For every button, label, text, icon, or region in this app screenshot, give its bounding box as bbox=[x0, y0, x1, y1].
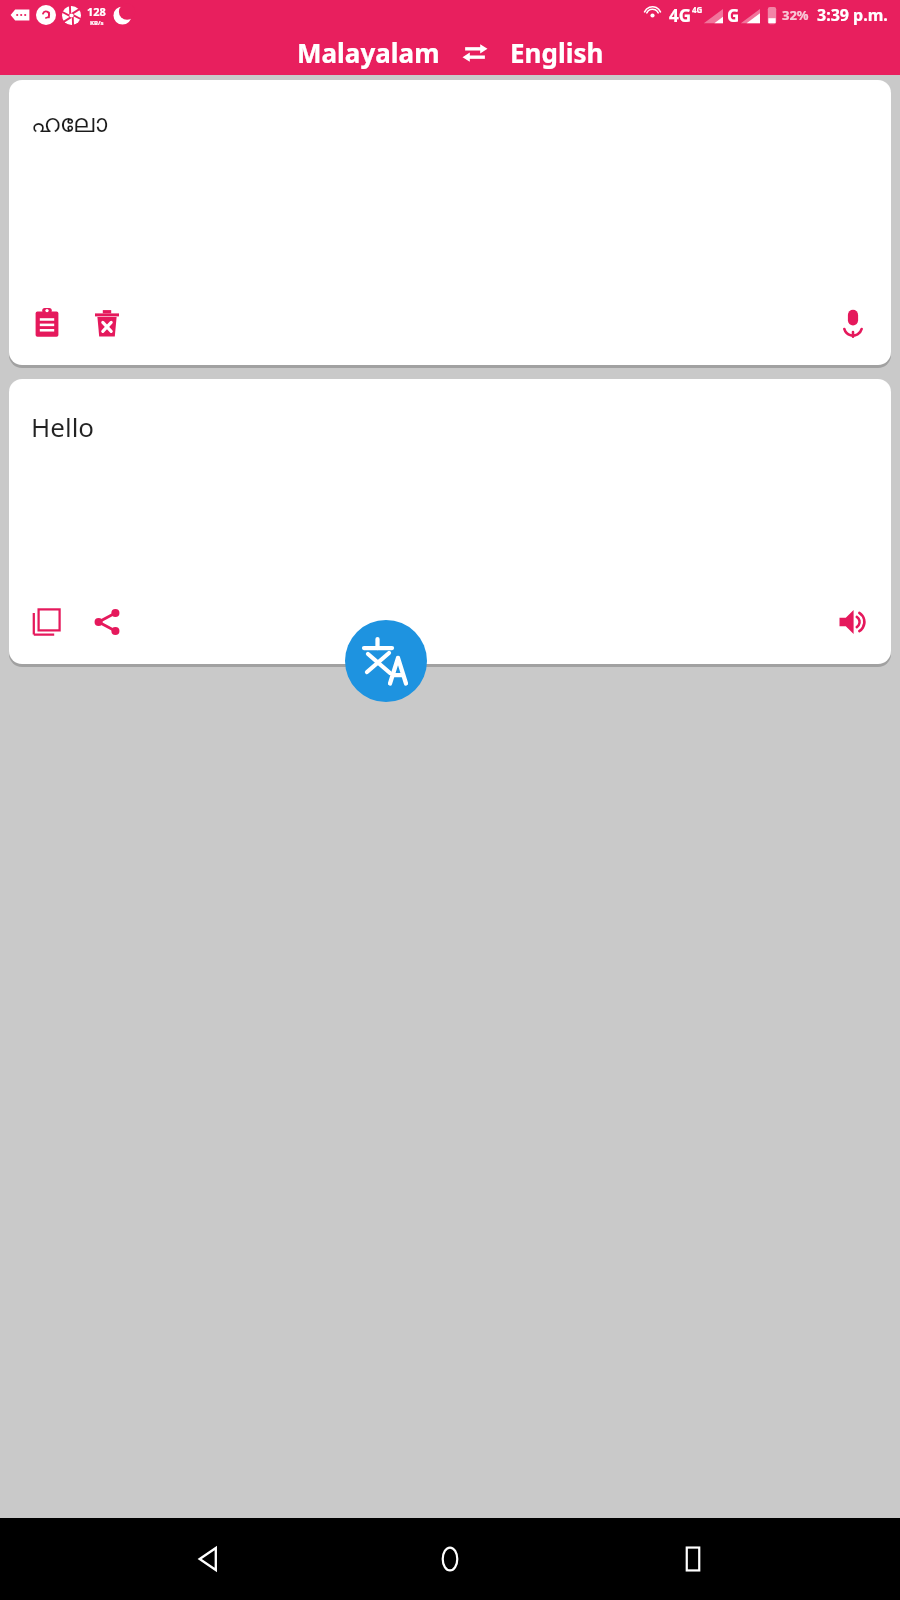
button[interactable]: Home bbox=[415, 1524, 485, 1594]
staticText: Hello bbox=[31, 409, 95, 444]
button[interactable]: Back bbox=[173, 1524, 243, 1594]
staticText: ഹലോ bbox=[31, 112, 108, 137]
button[interactable]: Speak translation bbox=[829, 598, 877, 646]
button[interactable]: English bbox=[504, 32, 610, 73]
staticText: 4G bbox=[669, 4, 692, 27]
staticText: 3:39 p.m. bbox=[817, 4, 888, 26]
button[interactable]: Recent apps bbox=[658, 1524, 728, 1594]
button[interactable]: ഹലോ bbox=[31, 112, 869, 137]
staticText: 4G bbox=[692, 4, 703, 15]
button[interactable]: Voice input bbox=[829, 299, 877, 347]
button[interactable]: Copy translation bbox=[23, 598, 71, 646]
button[interactable]: Translate bbox=[345, 620, 427, 702]
button[interactable]: Paste from clipboard bbox=[23, 299, 71, 347]
staticText: 128 bbox=[87, 4, 106, 19]
staticText: KB/s bbox=[90, 19, 104, 27]
button[interactable]: Swap languages bbox=[460, 38, 490, 68]
staticText: Malayalam bbox=[297, 35, 440, 70]
button[interactable]: Clear text bbox=[83, 299, 131, 347]
staticText: G bbox=[727, 4, 740, 27]
staticText: English bbox=[510, 35, 604, 70]
button[interactable]: Malayalam bbox=[291, 32, 446, 73]
staticText: 32% bbox=[782, 6, 809, 24]
button[interactable]: Share translation bbox=[83, 598, 131, 646]
button[interactable]: Hello bbox=[31, 409, 869, 444]
